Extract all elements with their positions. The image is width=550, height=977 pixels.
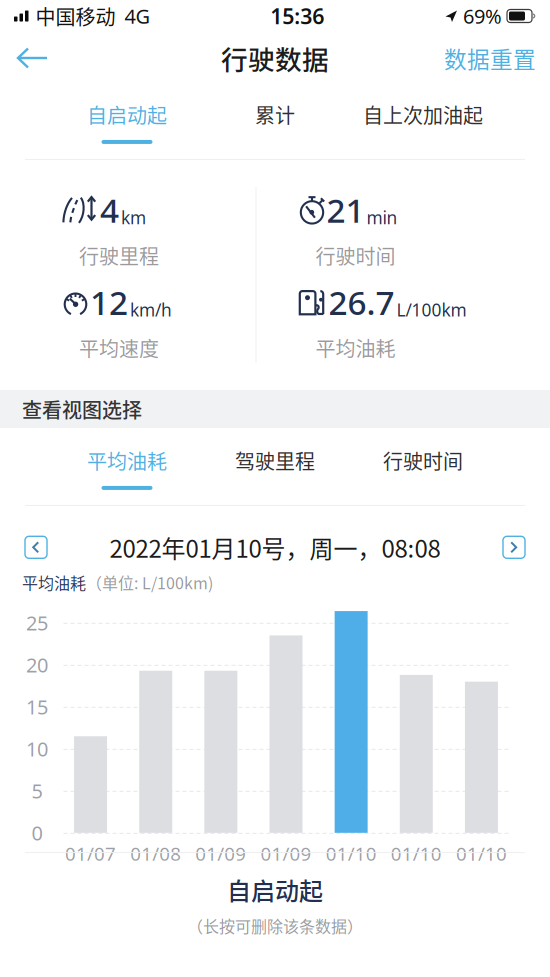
staticText: 累计 — [255, 100, 295, 129]
staticText: 平均油耗 — [22, 571, 86, 594]
staticText: 4 — [100, 188, 119, 232]
staticText: 查看视图选择 — [22, 394, 142, 423]
staticText: 01/09 — [260, 841, 311, 866]
staticText: 20 — [26, 652, 48, 678]
staticText: 行驶里程 — [79, 241, 159, 270]
button[interactable]: 驾驶里程 — [201, 441, 349, 495]
button[interactable]: 下一天 — [499, 532, 529, 562]
staticText: 行驶数据 — [221, 39, 329, 77]
staticText: 5 — [31, 778, 42, 804]
staticText: （单位: L/100km) — [86, 571, 213, 594]
staticText: （长按可删除该条数据） — [187, 914, 363, 937]
staticText: 21 — [326, 188, 364, 232]
staticText: 中国移动 — [35, 1, 115, 30]
staticText: 10 — [26, 736, 48, 762]
staticText: 01/10 — [326, 841, 377, 866]
staticText: 数据重置 — [444, 42, 536, 74]
staticText: min — [366, 206, 397, 229]
staticText: L/100km — [396, 298, 466, 321]
staticText: 12 — [90, 280, 128, 324]
staticText: 01/10 — [391, 841, 442, 866]
button[interactable]: 返回 — [2, 35, 62, 81]
button[interactable]: 累计 — [201, 95, 349, 149]
staticText: 15:36 — [270, 2, 324, 30]
button[interactable]: 自上次加油起 — [349, 95, 497, 149]
staticText: 26.7 — [328, 280, 394, 324]
staticText: 01/09 — [195, 841, 246, 866]
staticText: 驾驶里程 — [235, 446, 315, 475]
staticText: 自启动起 — [227, 872, 323, 907]
staticText: 平均油耗 — [315, 333, 395, 362]
staticText: km/h — [130, 298, 172, 321]
staticText: 01/07 — [65, 841, 116, 866]
staticText: 自上次加油起 — [363, 100, 483, 129]
staticText: 25 — [26, 610, 48, 636]
button[interactable]: 上一天 — [21, 532, 51, 562]
staticText: km — [121, 206, 146, 229]
staticText: 0 — [31, 820, 42, 846]
staticText: 01/10 — [456, 841, 507, 866]
staticText: 自启动起 — [87, 100, 167, 129]
button[interactable]: 行驶时间 — [349, 441, 497, 495]
staticText: 2022年01月10号，周一，08:08 — [109, 530, 440, 565]
staticText: 平均油耗 — [87, 446, 167, 475]
staticText: 行驶时间 — [383, 446, 463, 475]
staticText: 4G — [124, 3, 150, 29]
staticText: 平均速度 — [79, 333, 159, 362]
button[interactable]: 自启动起 — [53, 95, 201, 149]
staticText: 15 — [26, 694, 48, 720]
button[interactable]: 数据重置 — [436, 32, 544, 84]
staticText: 01/08 — [130, 841, 181, 866]
staticText: 69% — [463, 3, 502, 29]
staticText: 行驶时间 — [315, 241, 395, 270]
button[interactable]: 平均油耗 — [53, 441, 201, 495]
